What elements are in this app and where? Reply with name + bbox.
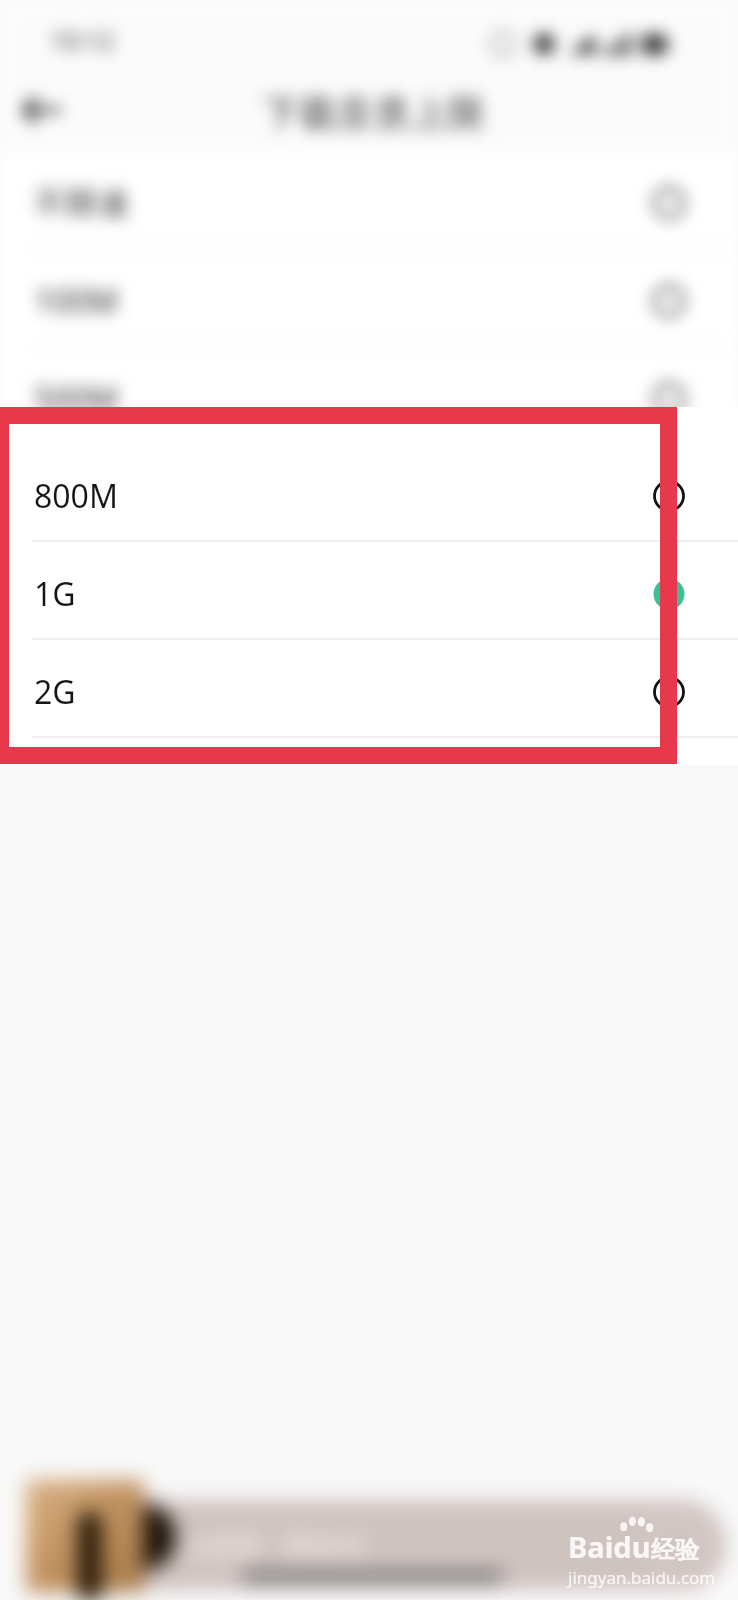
staticText: 500M [34, 377, 118, 421]
button[interactable]: Back [14, 88, 72, 146]
button[interactable]: Now playing [26, 1480, 144, 1592]
button[interactable]: 2G [0, 640, 738, 738]
staticText: 经验 [651, 1535, 699, 1565]
button[interactable]: 不限速 [0, 151, 738, 249]
staticText: 1G [34, 573, 76, 617]
button[interactable]: Playlist [648, 1519, 700, 1571]
button[interactable]: 100M [0, 249, 738, 347]
staticText: 800M [34, 474, 118, 518]
button[interactable]: 七里香 - 周杰伦 [58, 1500, 726, 1590]
staticText: 下载音质上限 [263, 90, 485, 137]
staticText: 2G [34, 670, 76, 714]
staticText: 1G [34, 572, 76, 616]
button[interactable]: 500M [0, 347, 738, 445]
button[interactable]: 800M [0, 444, 738, 542]
staticText: 2G [34, 671, 76, 715]
staticText: 不限速 [34, 183, 130, 223]
staticText: 10:12 [50, 23, 115, 57]
staticText: jingyan.baidu.com [568, 1566, 716, 1589]
staticText: 100M [34, 279, 118, 323]
staticText: 七里香 - 周杰伦 [180, 1527, 365, 1564]
button[interactable]: 1G [0, 542, 738, 640]
staticText: Baidu [568, 1527, 651, 1566]
button[interactable]: 1G [0, 543, 738, 641]
button[interactable]: 800M [0, 445, 738, 543]
button[interactable]: 2G [0, 641, 738, 738]
staticText: 800M [34, 475, 118, 519]
